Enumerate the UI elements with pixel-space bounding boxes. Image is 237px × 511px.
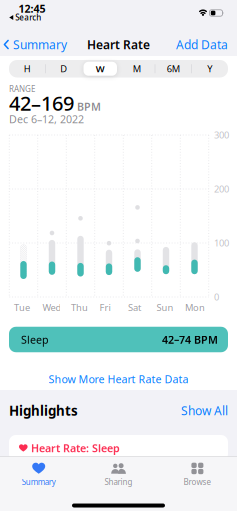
staticText: Thu (71, 301, 88, 314)
button[interactable]: Y (192, 60, 228, 77)
button[interactable]: 6M (155, 60, 191, 77)
staticText: W (96, 63, 105, 75)
button[interactable]: Summary (9, 460, 69, 490)
staticText: Sleep (21, 332, 49, 347)
staticText: M (133, 63, 141, 75)
button[interactable]: Back to Summary (3, 34, 67, 54)
staticText: Y (207, 63, 212, 75)
button[interactable]: Heart Rate: Sleep (9, 435, 228, 461)
staticText: RANGE (9, 84, 35, 94)
staticText: BPM (77, 99, 101, 114)
staticText: Add Data (176, 36, 228, 52)
staticText: Fri (99, 301, 110, 314)
staticText: Browse (183, 477, 211, 487)
staticText: 0 (214, 291, 219, 303)
button[interactable]: Sleep (9, 327, 228, 352)
button[interactable]: M (119, 60, 155, 77)
staticText: Search (15, 12, 41, 23)
button[interactable]: Add Data (176, 34, 228, 54)
staticText: Sun (156, 301, 173, 314)
staticText: Dec 6–12, 2022 (9, 112, 84, 126)
staticText: Heart Rate: Sleep (31, 441, 120, 455)
staticText: 12:45 (18, 1, 45, 16)
staticText: Heart Rate (87, 36, 150, 52)
button[interactable]: Browse (167, 460, 227, 490)
staticText: Show All (181, 402, 228, 418)
staticText: 6M (167, 63, 180, 75)
button[interactable]: H (9, 60, 45, 77)
button[interactable]: Show More Heart Rate Data (48, 370, 188, 388)
button[interactable]: W (82, 60, 118, 77)
staticText: Highlights (9, 402, 78, 419)
staticText: 42–169 (9, 90, 74, 116)
button[interactable]: Sharing (88, 460, 148, 490)
staticText: Tue (14, 301, 30, 314)
staticText: 42–74 BPM (162, 332, 218, 347)
staticText: Summary (22, 477, 56, 487)
staticText: Wed (42, 301, 61, 314)
staticText: Sharing (104, 477, 132, 487)
staticText: Summary (13, 36, 67, 52)
button[interactable]: Show All (181, 402, 228, 418)
staticText: 100 (214, 237, 229, 249)
staticText: Show More Heart Rate Data (48, 372, 188, 386)
button[interactable]: D (46, 60, 82, 77)
staticText: Mon (185, 301, 205, 314)
staticText: 200 (214, 183, 229, 195)
staticText: Sat (128, 301, 141, 314)
staticText: H (24, 63, 31, 75)
staticText: D (60, 63, 67, 75)
staticText: 300 (214, 129, 229, 141)
